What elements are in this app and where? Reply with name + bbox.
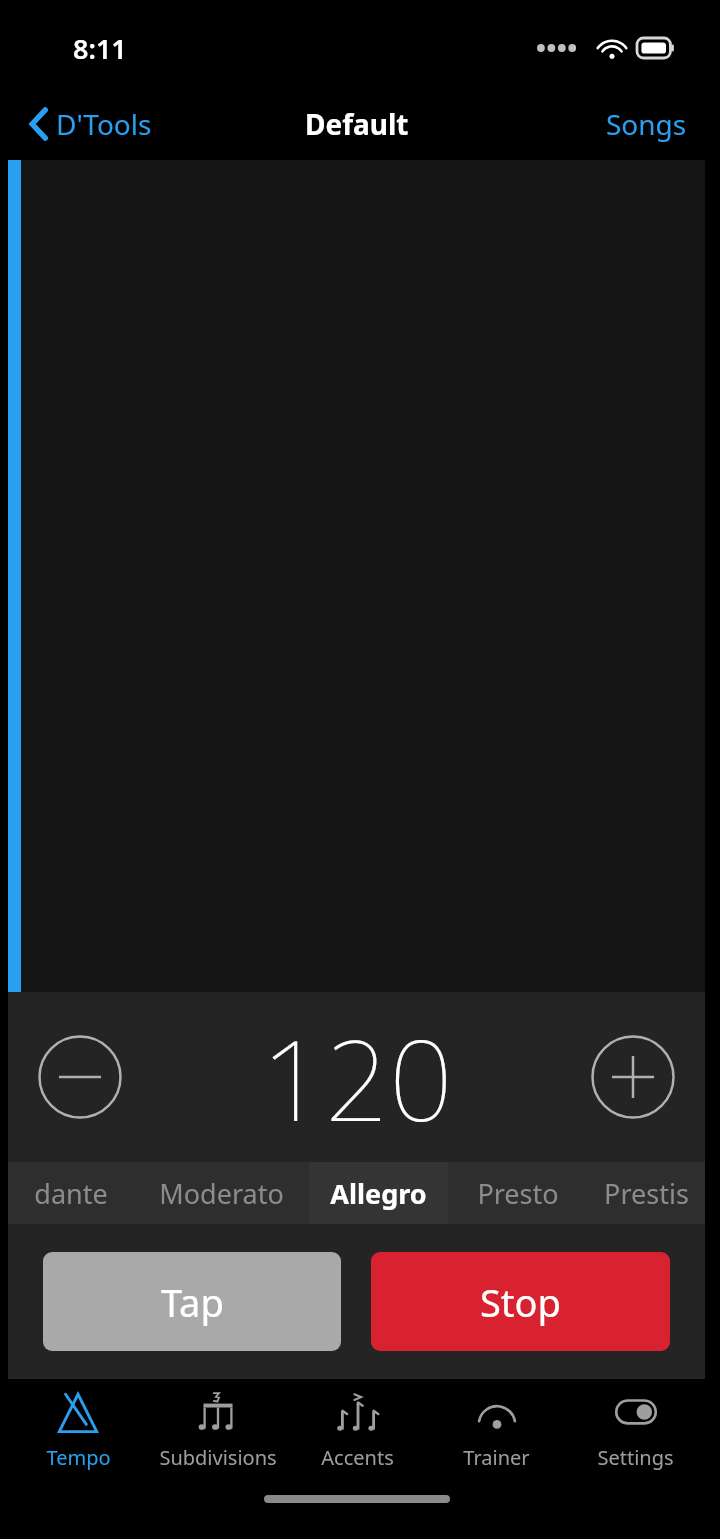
button[interactable]: Tempo <box>8 1379 148 1479</box>
staticText: 8:11 <box>73 30 127 67</box>
button[interactable]: Moderato <box>134 1162 309 1224</box>
staticText: Default <box>305 105 409 143</box>
button[interactable]: dante <box>8 1162 134 1224</box>
button[interactable]: Settings <box>566 1379 705 1479</box>
staticText: 120 <box>261 1001 453 1154</box>
staticText: Accents <box>321 1444 394 1471</box>
staticText: Songs <box>606 105 687 143</box>
button[interactable]: D'Tools <box>8 99 166 149</box>
button[interactable]: Increase tempo <box>583 1027 683 1127</box>
staticText: Tap <box>161 1276 224 1328</box>
staticText: D'Tools <box>56 105 152 143</box>
button[interactable]: Allegro <box>309 1162 448 1224</box>
staticText: Tempo <box>46 1444 111 1471</box>
staticText: Moderato <box>159 1175 284 1212</box>
button[interactable]: Accents <box>288 1379 427 1479</box>
staticText: Stop <box>480 1276 561 1328</box>
button[interactable]: Tap <box>43 1252 341 1351</box>
button[interactable]: Songs <box>588 97 705 151</box>
button[interactable]: Presto <box>448 1162 587 1224</box>
button[interactable]: Stop <box>371 1252 670 1351</box>
button[interactable]: Decrease tempo <box>30 1027 130 1127</box>
staticText: Allegro <box>330 1175 427 1212</box>
button[interactable]: Trainer <box>427 1379 566 1479</box>
staticText: Prestis <box>604 1175 689 1212</box>
button[interactable]: Prestis <box>587 1162 705 1224</box>
staticText: Trainer <box>463 1444 530 1471</box>
button[interactable]: Subdivisions <box>148 1379 288 1479</box>
staticText: Settings <box>597 1444 674 1471</box>
staticText: Presto <box>477 1175 559 1212</box>
staticText: dante <box>34 1175 108 1212</box>
staticText: Subdivisions <box>159 1444 277 1471</box>
